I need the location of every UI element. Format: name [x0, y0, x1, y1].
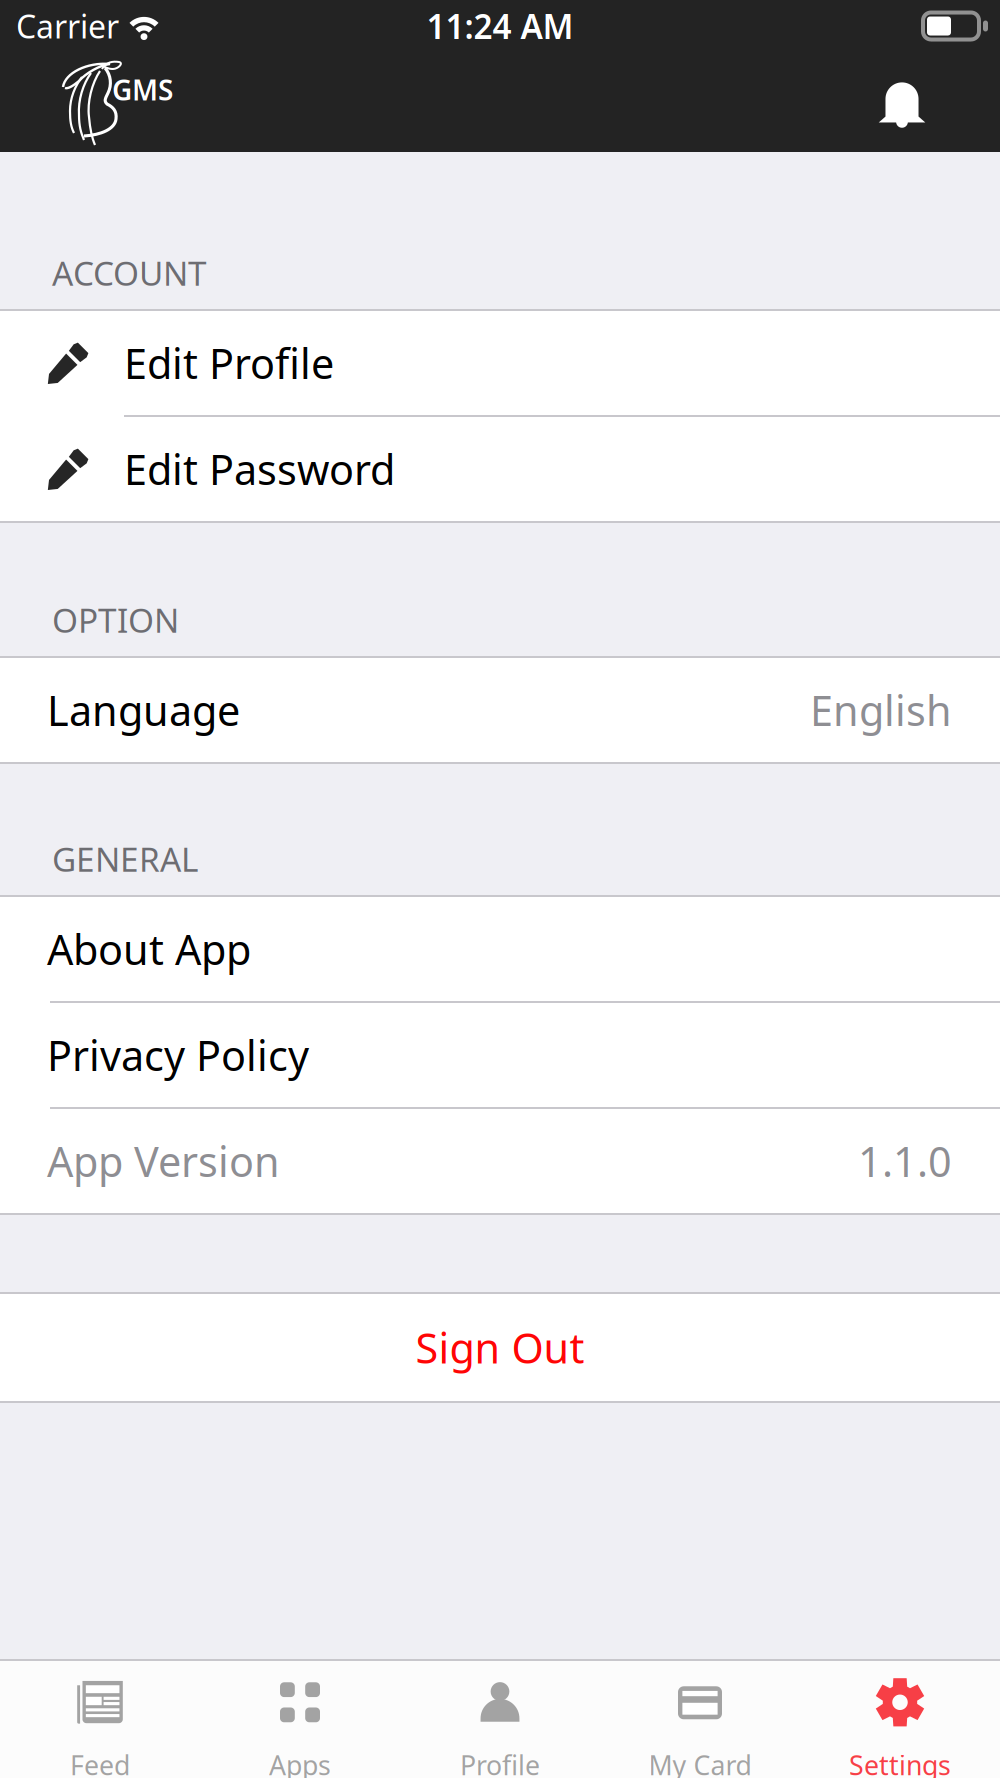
staticText: Profile: [460, 1747, 540, 1778]
button[interactable]: Language: [0, 658, 1000, 762]
button[interactable]: App Version: [0, 1109, 1000, 1213]
button[interactable]: GMS home: [60, 59, 220, 145]
staticText: Language: [47, 683, 240, 737]
staticText: 11:24 AM: [426, 4, 573, 48]
button[interactable]: Privacy Policy: [0, 1003, 1000, 1107]
staticText: English: [810, 683, 952, 737]
button[interactable]: About App: [0, 897, 1000, 1001]
staticText: Sign Out: [415, 1320, 584, 1375]
button[interactable]: Edit Password: [0, 417, 1000, 521]
staticText: ACCOUNT: [52, 251, 207, 295]
button[interactable]: Settings: [800, 1661, 1000, 1778]
staticText: GMS: [112, 71, 173, 108]
staticText: OPTION: [52, 598, 179, 642]
button[interactable]: My Card: [600, 1661, 800, 1778]
staticText: Feed: [70, 1747, 130, 1778]
staticText: Settings: [849, 1747, 951, 1778]
staticText: Edit Password: [124, 442, 395, 496]
button[interactable]: Notifications: [856, 52, 948, 152]
staticText: Carrier: [16, 5, 119, 47]
staticText: GENERAL: [52, 837, 198, 881]
staticText: App Version: [47, 1134, 280, 1188]
staticText: Apps: [269, 1747, 331, 1778]
button[interactable]: Edit Profile: [0, 311, 1000, 415]
staticText: Edit Profile: [124, 336, 334, 390]
button[interactable]: Feed: [0, 1661, 200, 1778]
button[interactable]: Profile: [400, 1661, 600, 1778]
button[interactable]: Apps: [200, 1661, 400, 1778]
staticText: Privacy Policy: [47, 1028, 309, 1082]
staticText: About App: [47, 922, 251, 976]
staticText: My Card: [648, 1747, 751, 1778]
button[interactable]: Sign Out: [0, 1294, 1000, 1401]
staticText: 1.1.0: [858, 1134, 952, 1188]
